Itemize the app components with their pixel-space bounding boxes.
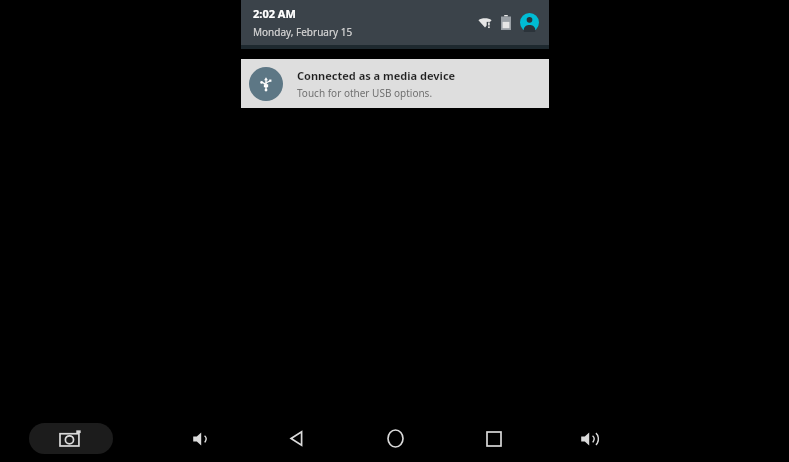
staticText: Monday, February 15 [253, 25, 353, 39]
other: Wi-Fi [478, 16, 492, 30]
button[interactable]: Volume up [568, 423, 612, 454]
staticText: Connected as a media device [297, 68, 456, 83]
button[interactable]: 2:02 AM [241, 0, 549, 45]
other: Battery [501, 15, 511, 30]
button[interactable]: Recent apps [472, 423, 516, 454]
button[interactable]: Home [373, 423, 417, 454]
other: USB [258, 76, 274, 92]
staticText: 2:02 AM [253, 6, 296, 21]
staticText: Touch for other USB options. [297, 86, 433, 100]
button[interactable]: Back [274, 423, 318, 454]
button[interactable]: Take screenshot [29, 423, 113, 454]
button[interactable]: USB [241, 59, 549, 108]
other: User profile [520, 13, 539, 32]
button[interactable]: Volume down [180, 423, 224, 454]
